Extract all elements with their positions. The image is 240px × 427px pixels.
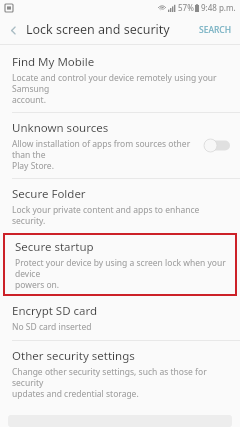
button[interactable]: Unknown sources <box>0 113 240 178</box>
staticText: Lock screen and security <box>26 21 191 38</box>
staticText: Allow installation of apps from sources … <box>12 138 198 171</box>
staticText: Locate and control your device remotely … <box>12 72 230 105</box>
button[interactable]: Unknown sources toggle <box>204 139 230 152</box>
staticText: Secure Folder <box>12 186 86 202</box>
staticText: 9:48 p.m. <box>201 2 236 13</box>
staticText: SEARCH <box>199 24 232 36</box>
button[interactable]: Encrypt SD card <box>0 296 240 340</box>
button[interactable]: Back <box>0 17 26 43</box>
staticText: Secure startup <box>15 239 94 255</box>
staticText: Lock your private content and apps to en… <box>12 204 230 226</box>
button[interactable]: Other security settings <box>0 341 240 406</box>
staticText: Other security settings <box>12 348 135 364</box>
button[interactable]: Find My Mobile <box>0 49 240 112</box>
staticText: Encrypt SD card <box>12 303 98 319</box>
staticText: Change other security settings, such as … <box>12 366 230 399</box>
staticText: Unknown sources <box>12 120 109 136</box>
staticText: 57% <box>178 2 194 13</box>
button[interactable]: SEARCH <box>191 18 240 42</box>
button[interactable]: Secure Folder <box>0 179 240 233</box>
button[interactable]: Secure startup <box>3 233 237 296</box>
staticText: No SD card inserted <box>12 321 92 333</box>
staticText: Protect your device by using a screen lo… <box>15 257 227 290</box>
staticText: Find My Mobile <box>12 54 95 70</box>
